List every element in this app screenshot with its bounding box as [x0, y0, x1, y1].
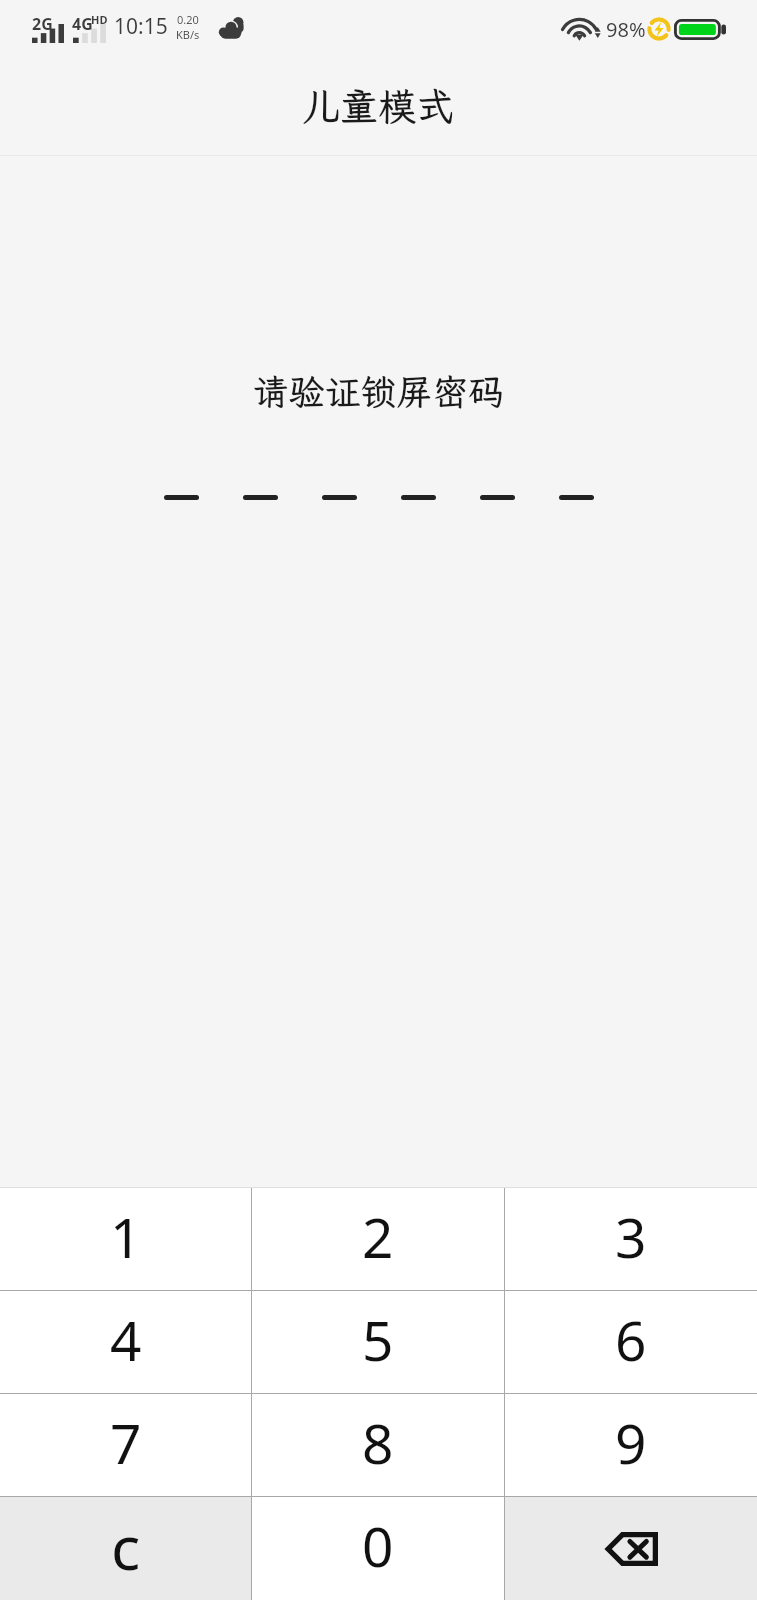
staticText: 请验证锁屏密码 [252, 368, 505, 415]
staticText: 7 [110, 1405, 142, 1480]
staticText: 2G [32, 13, 53, 35]
staticText: 2 [362, 1199, 394, 1274]
staticText: 儿童模式 [302, 81, 455, 131]
staticText: 4G [72, 13, 93, 35]
button[interactable]: 8 [252, 1394, 504, 1497]
staticText: 8 [362, 1405, 394, 1480]
button[interactable]: 4 [0, 1291, 251, 1394]
button[interactable]: 7 [0, 1394, 251, 1497]
button[interactable]: c [0, 1497, 251, 1600]
button[interactable]: 5 [252, 1291, 504, 1394]
button[interactable]: Delete [505, 1497, 757, 1600]
staticText: 0 [362, 1508, 394, 1583]
staticText: 9 [615, 1405, 647, 1480]
staticText: KB/s [176, 27, 200, 42]
staticText: 5 [362, 1302, 394, 1377]
staticText: 4 [110, 1302, 142, 1377]
staticText: HD [91, 12, 108, 27]
button[interactable]: 0 [252, 1497, 504, 1600]
button[interactable]: 1 [0, 1188, 251, 1291]
staticText: 10:15 [114, 12, 168, 41]
staticText: 1 [110, 1199, 142, 1274]
staticText: 6 [615, 1302, 647, 1377]
button[interactable]: 2 [252, 1188, 504, 1291]
button[interactable]: 9 [505, 1394, 757, 1497]
staticText: 0.20 [177, 12, 199, 27]
button[interactable]: 3 [505, 1188, 757, 1291]
staticText: 3 [615, 1199, 647, 1274]
staticText: 98% [606, 16, 646, 43]
button[interactable]: 6 [505, 1291, 757, 1394]
staticText: c [111, 1505, 141, 1588]
